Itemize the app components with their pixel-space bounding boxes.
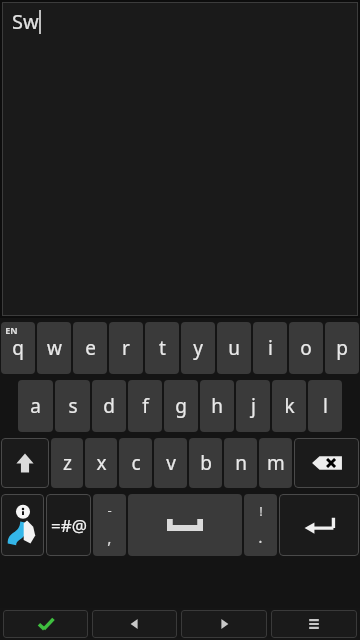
staticText: l — [323, 393, 328, 419]
staticText: t — [159, 335, 166, 361]
button[interactable]: j — [236, 380, 270, 432]
staticText: a — [30, 393, 41, 419]
staticText: i — [268, 335, 273, 361]
button[interactable]: e — [73, 322, 107, 374]
button[interactable]: m — [259, 438, 292, 488]
button[interactable]: i — [253, 322, 287, 374]
staticText: =#@ — [51, 514, 87, 537]
button[interactable]: k — [272, 380, 306, 432]
button[interactable]: y — [181, 322, 215, 374]
staticText: Sw — [12, 8, 39, 35]
staticText: w — [47, 335, 62, 361]
staticText: q — [12, 335, 24, 361]
staticText: d — [103, 393, 115, 419]
button[interactable]: a — [18, 380, 53, 432]
staticText: EN — [5, 324, 18, 336]
button[interactable]: s — [55, 380, 90, 432]
button[interactable]: t — [145, 322, 179, 374]
button[interactable]: Accept — [3, 610, 88, 638]
button[interactable]: d — [92, 380, 126, 432]
button[interactable]: - — [93, 494, 126, 556]
staticText: s — [68, 393, 78, 419]
staticText: o — [300, 335, 312, 361]
button[interactable]: Forward — [181, 610, 267, 638]
button[interactable]: Enter — [279, 494, 359, 556]
button[interactable]: w — [37, 322, 71, 374]
staticText: v — [166, 450, 176, 476]
button[interactable]: Shift — [1, 438, 49, 488]
staticText: z — [63, 450, 72, 476]
button[interactable]: g — [164, 380, 198, 432]
staticText: r — [122, 335, 130, 361]
button[interactable]: Back — [92, 610, 177, 638]
button[interactable]: z — [51, 438, 83, 488]
button[interactable]: Menu — [271, 610, 357, 638]
staticText: e — [85, 335, 96, 361]
staticText: - — [107, 501, 112, 519]
staticText: m — [267, 450, 285, 476]
staticText: p — [336, 335, 348, 361]
button[interactable]: l — [308, 380, 342, 432]
staticText: b — [200, 450, 212, 476]
button[interactable]: u — [217, 322, 251, 374]
button[interactable]: Backspace — [294, 438, 359, 488]
button[interactable]: v — [154, 438, 187, 488]
button[interactable]: Swype help — [1, 494, 44, 556]
staticText: h — [211, 393, 223, 419]
button[interactable]: Space — [128, 494, 242, 556]
staticText: y — [193, 335, 203, 361]
staticText: c — [131, 450, 141, 476]
staticText: j — [251, 393, 256, 419]
button[interactable]: r — [109, 322, 143, 374]
button[interactable]: h — [200, 380, 234, 432]
button[interactable]: p — [325, 322, 359, 374]
button[interactable]: =#@ — [46, 494, 91, 556]
staticText: k — [284, 393, 295, 419]
staticText: n — [235, 450, 247, 476]
staticText: ! — [259, 502, 263, 520]
button[interactable]: f — [128, 380, 162, 432]
button[interactable]: Sw — [2, 2, 358, 316]
staticText: f — [142, 393, 149, 419]
staticText: . — [258, 526, 263, 548]
staticText: g — [175, 393, 187, 419]
button[interactable]: ! — [244, 494, 277, 556]
staticText: u — [228, 335, 240, 361]
button[interactable]: b — [189, 438, 222, 488]
button[interactable]: q — [1, 322, 35, 374]
button[interactable]: x — [85, 438, 117, 488]
button[interactable]: c — [119, 438, 152, 488]
button[interactable]: o — [289, 322, 323, 374]
staticText: , — [107, 527, 112, 549]
button[interactable]: n — [224, 438, 257, 488]
staticText: x — [96, 450, 107, 476]
